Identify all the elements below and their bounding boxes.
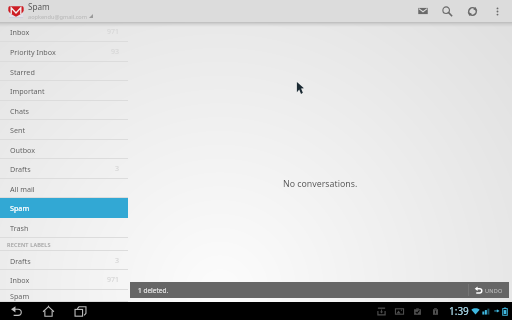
- staticText: Trash: [10, 223, 29, 233]
- staticText: 1 deleted.: [138, 286, 169, 295]
- staticText: 3: [115, 256, 120, 266]
- staticText: Inbox: [10, 275, 30, 285]
- button[interactable]: Outbox: [0, 140, 128, 159]
- button[interactable]: Inbox: [0, 270, 128, 290]
- staticText: RECENT LABELS: [7, 241, 51, 248]
- staticText: Spam: [10, 291, 30, 301]
- staticText: aopkendu@gmail.com: [28, 13, 87, 21]
- button[interactable]: Chats: [0, 101, 128, 120]
- staticText: Drafts: [10, 164, 31, 174]
- button[interactable]: Recents: [64, 302, 96, 320]
- button[interactable]: Spam: [0, 198, 128, 218]
- button[interactable]: Sent: [0, 120, 128, 140]
- staticText: Spam: [28, 1, 50, 12]
- staticText: Sent: [10, 125, 26, 135]
- button[interactable]: Trash: [0, 218, 128, 238]
- staticText: 3: [115, 164, 120, 174]
- staticText: Priority Inbox: [10, 47, 56, 57]
- staticText: Chats: [10, 106, 30, 116]
- button[interactable]: UNDO: [469, 282, 509, 298]
- button[interactable]: More options: [485, 0, 510, 22]
- button[interactable]: Search: [435, 0, 460, 22]
- button[interactable]: Priority Inbox: [0, 42, 128, 62]
- button[interactable]: Starred: [0, 62, 128, 81]
- button[interactable]: Home: [32, 302, 64, 320]
- staticText: 971: [107, 275, 120, 285]
- button[interactable]: Back: [0, 302, 32, 320]
- staticText: All mail: [10, 184, 35, 194]
- staticText: Spam: [10, 203, 30, 213]
- staticText: 1:39: [449, 304, 469, 318]
- staticText: Starred: [10, 67, 35, 77]
- button[interactable]: Inbox: [0, 22, 128, 42]
- staticText: 971: [107, 27, 120, 37]
- button[interactable]: Drafts: [0, 159, 128, 179]
- staticText: UNDO: [485, 287, 503, 294]
- staticText: 93: [111, 47, 120, 57]
- staticText: Important: [10, 86, 45, 96]
- button[interactable]: Drafts: [0, 251, 128, 270]
- button[interactable]: All mail: [0, 179, 128, 198]
- button[interactable]: Spam: [0, 290, 128, 302]
- staticText: Drafts: [10, 256, 31, 266]
- button[interactable]: Important: [0, 81, 128, 101]
- button[interactable]: Refresh: [460, 0, 485, 22]
- staticText: No conversations.: [283, 178, 358, 190]
- button[interactable]: Spam: [0, 0, 97, 22]
- button[interactable]: Compose: [410, 0, 435, 22]
- staticText: Inbox: [10, 27, 30, 37]
- staticText: Outbox: [10, 145, 36, 155]
